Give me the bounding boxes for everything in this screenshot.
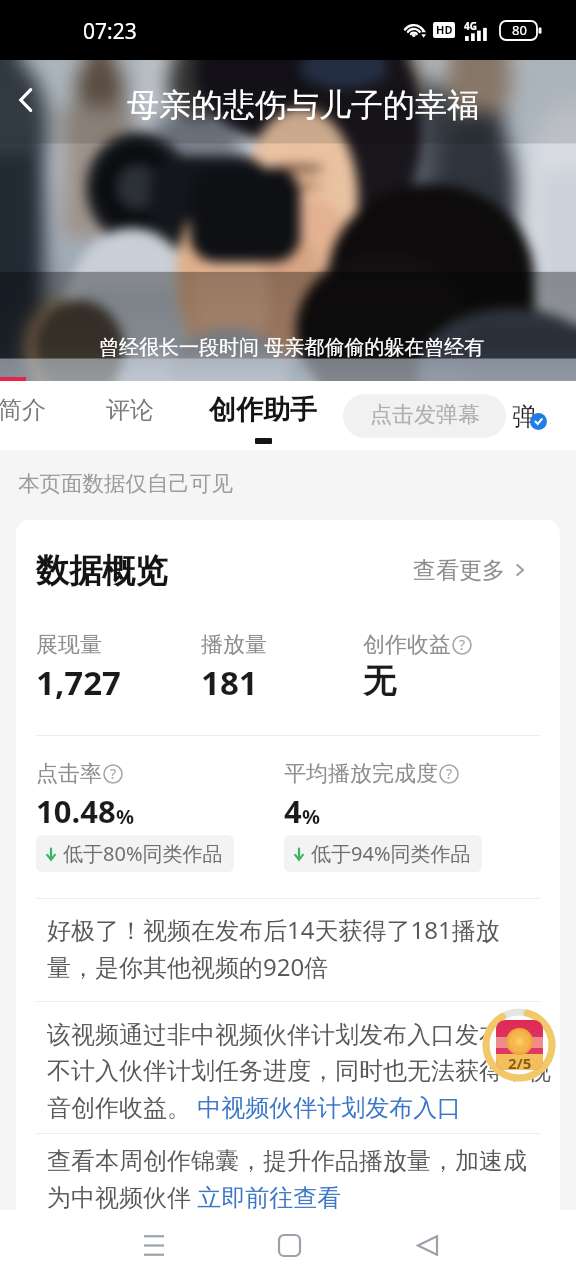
staticText: ? bbox=[459, 635, 466, 654]
staticText: 点击率 bbox=[36, 760, 102, 788]
button[interactable]: Back bbox=[383, 1220, 471, 1270]
staticText: 简介 bbox=[0, 395, 46, 425]
button[interactable]: 点击发弹幕 bbox=[343, 394, 506, 438]
button[interactable]: Back bbox=[4, 78, 48, 122]
staticText: 母亲的悲伤与儿子的幸福 bbox=[127, 85, 479, 125]
staticText: 评论 bbox=[106, 395, 154, 425]
button[interactable]: 简介 bbox=[0, 381, 64, 450]
staticText: 4 bbox=[284, 790, 302, 832]
button[interactable]: 查看更多 bbox=[413, 549, 527, 591]
staticText: % bbox=[302, 803, 321, 830]
staticText: ? bbox=[110, 764, 117, 783]
button[interactable]: Recent apps bbox=[110, 1220, 198, 1270]
staticText: 无 bbox=[363, 660, 396, 702]
staticText: 创作助手 bbox=[209, 393, 317, 427]
staticText: 创作收益 bbox=[363, 631, 451, 659]
staticText: 80 bbox=[512, 21, 527, 39]
staticText: 1,727 bbox=[36, 660, 121, 705]
staticText: 4G bbox=[464, 19, 477, 33]
staticText: 展现量 bbox=[36, 631, 102, 659]
button[interactable]: Reward progress 2 of 5 bbox=[479, 1003, 559, 1087]
staticText: % bbox=[116, 803, 135, 830]
staticText: 07:23 bbox=[83, 17, 137, 46]
staticText: 弹 bbox=[512, 401, 537, 432]
staticText: 低于94%同类作品 bbox=[311, 840, 471, 867]
staticText: ? bbox=[446, 764, 453, 783]
staticText: 查看更多 bbox=[413, 556, 505, 585]
staticText: 平均播放完成度 bbox=[284, 760, 438, 788]
button[interactable]: 查看本周创作锦囊，提升作品播放量，加速成 为中视频伙伴 立即前往查看 bbox=[47, 1146, 527, 1210]
staticText: 曾经很长一段时间 母亲都偷偷的躲在曾经有 bbox=[99, 333, 485, 360]
button[interactable]: Danmaku toggle bbox=[508, 391, 556, 439]
button[interactable]: Home bbox=[245, 1220, 333, 1270]
staticText: 本页面数据仅自己可见 bbox=[18, 470, 233, 497]
staticText: 181 bbox=[201, 660, 258, 705]
staticText: HD bbox=[436, 22, 453, 37]
staticText: 10.48 bbox=[36, 790, 116, 832]
button[interactable]: 该视频通过非中视频伙伴计划发布入口发布 不计入伙伴计划任务进度，同时也无法获得中… bbox=[47, 1020, 551, 1123]
staticText: 播放量 bbox=[201, 631, 267, 659]
staticText: 数据概览 bbox=[36, 550, 168, 592]
button[interactable]: 创作助手 bbox=[201, 381, 325, 450]
staticText: 好极了！视频在发布后14天获得了181播放 量，是你其他视频的920倍 bbox=[47, 913, 500, 983]
staticText: 点击发弹幕 bbox=[370, 401, 480, 429]
staticText: 低于80%同类作品 bbox=[63, 840, 223, 867]
staticText: 2/5 bbox=[508, 1053, 532, 1069]
button[interactable]: 评论 bbox=[88, 381, 172, 450]
